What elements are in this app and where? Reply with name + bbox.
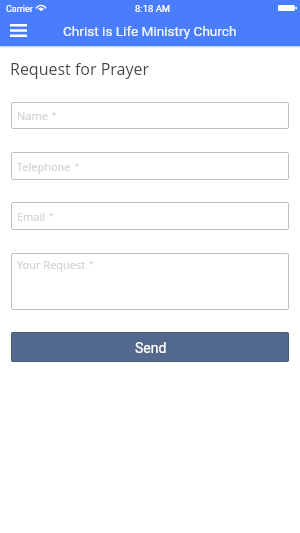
staticText: Name * — [17, 108, 57, 123]
button[interactable]: Name * — [11, 102, 289, 129]
staticText: Your Request * — [17, 257, 94, 272]
staticText: Send — [135, 340, 167, 356]
staticText: Email * — [17, 209, 54, 224]
staticText: Carrier — [6, 4, 33, 15]
button[interactable]: Send — [11, 332, 289, 362]
staticText: 8:18 AM — [135, 3, 171, 14]
button[interactable]: Your Request * — [11, 253, 289, 310]
staticText: Christ is Life Ministry Church — [63, 23, 237, 39]
staticText: Telephone * — [17, 159, 80, 174]
button[interactable]: Open navigation menu — [0, 19, 36, 46]
staticText: Request for Prayer — [10, 58, 149, 80]
button[interactable]: Telephone * — [11, 152, 289, 180]
button[interactable]: Email * — [11, 202, 289, 230]
